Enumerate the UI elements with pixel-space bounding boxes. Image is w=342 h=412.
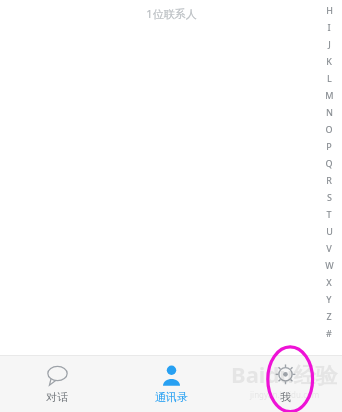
button[interactable]: U [320,222,338,239]
staticText: L [327,72,332,84]
button[interactable]: X [320,273,338,290]
staticText: O [325,123,333,135]
staticText: jingyan.baidu.com [250,389,320,400]
staticText: Y [326,293,332,305]
staticText: I [327,21,331,33]
button[interactable]: I [320,18,338,35]
staticText: J [328,38,331,50]
staticText: N [326,106,333,118]
button[interactable]: M [320,86,338,103]
button[interactable]: H [320,1,338,18]
button[interactable]: R [320,171,338,188]
button[interactable]: # [320,324,338,341]
staticText: 通讯录 [155,390,188,404]
button[interactable]: W [320,256,338,273]
button[interactable]: N [320,103,338,120]
button[interactable]: O [320,120,338,137]
staticText: 我 [280,390,291,404]
button[interactable]: Y [320,290,338,307]
staticText: Q [325,157,333,169]
staticText: 对话 [46,390,68,404]
button[interactable]: 我 [228,356,342,412]
staticText: U [326,225,333,237]
staticText: H [326,4,333,16]
staticText: V [326,242,332,254]
button[interactable]: Z [320,307,338,324]
button[interactable]: V [320,239,338,256]
staticText: S [327,191,332,203]
button[interactable]: K [320,52,338,69]
staticText: M [325,89,334,101]
button[interactable]: P [320,137,338,154]
button[interactable]: T [320,205,338,222]
staticText: P [326,140,332,152]
staticText: # [326,327,332,339]
button[interactable]: J [320,35,338,52]
staticText: 1位联系人 [146,6,197,21]
staticText: R [326,174,332,186]
button[interactable]: S [320,188,338,205]
staticText: X [326,276,332,288]
staticText: K [326,55,332,67]
button[interactable]: 对话 [0,356,114,412]
staticText: Baidu经验 [231,359,338,389]
staticText: T [326,208,332,220]
button[interactable]: 通讯录 [114,356,228,412]
staticText: W [325,259,334,271]
staticText: Z [326,310,332,322]
button[interactable]: Q [320,154,338,171]
button[interactable]: L [320,69,338,86]
